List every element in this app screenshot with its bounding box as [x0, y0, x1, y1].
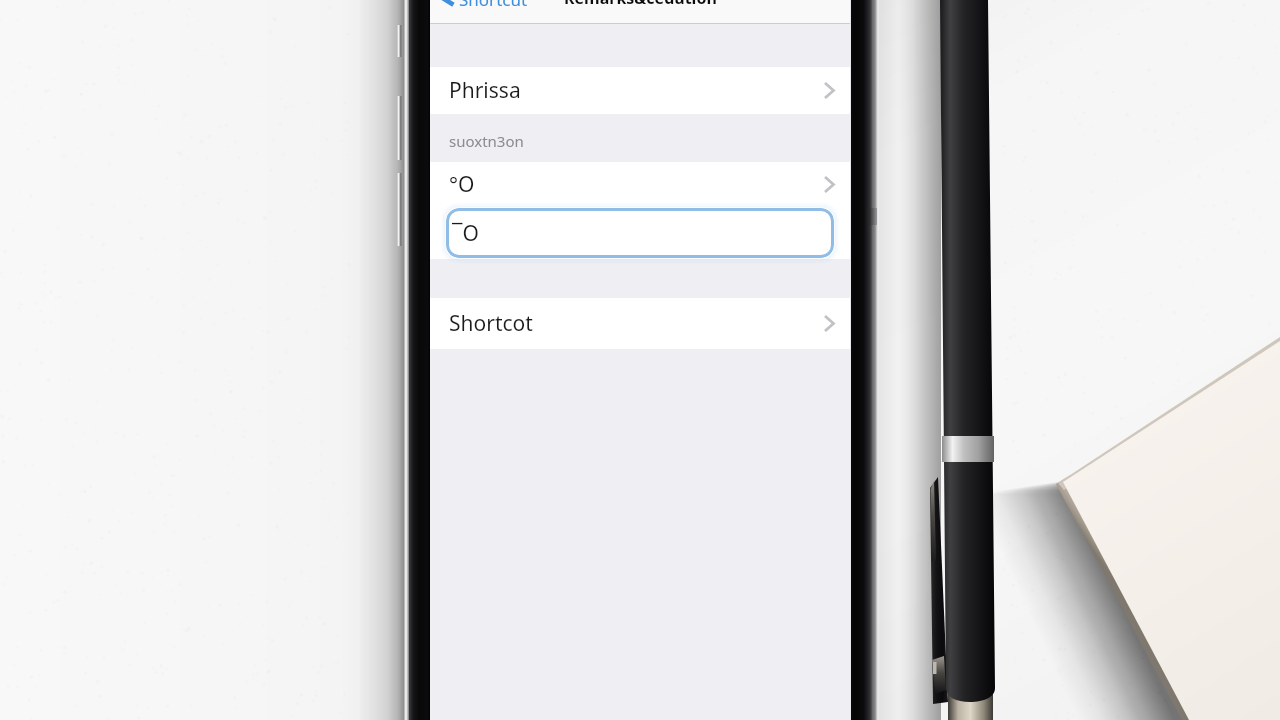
button[interactable]: Shortcot	[430, 298, 850, 349]
staticText: ¯O	[452, 219, 479, 248]
button[interactable]: ¯O	[446, 208, 834, 258]
staticText: Shortcot	[449, 309, 533, 338]
other: Open	[824, 177, 834, 192]
staticText: Remarks&cedution	[564, 0, 717, 9]
staticText: Shortcut	[459, 0, 528, 8]
staticText: Phrissa	[449, 76, 521, 105]
other: Open	[824, 316, 834, 331]
button[interactable]: °O	[430, 162, 850, 207]
staticText: suoxtn3on	[449, 131, 524, 151]
button[interactable]: Phrissa	[430, 67, 850, 114]
staticText: °O	[449, 170, 475, 199]
button[interactable]: Shortcut	[436, 0, 532, 10]
other: Open	[824, 83, 834, 98]
